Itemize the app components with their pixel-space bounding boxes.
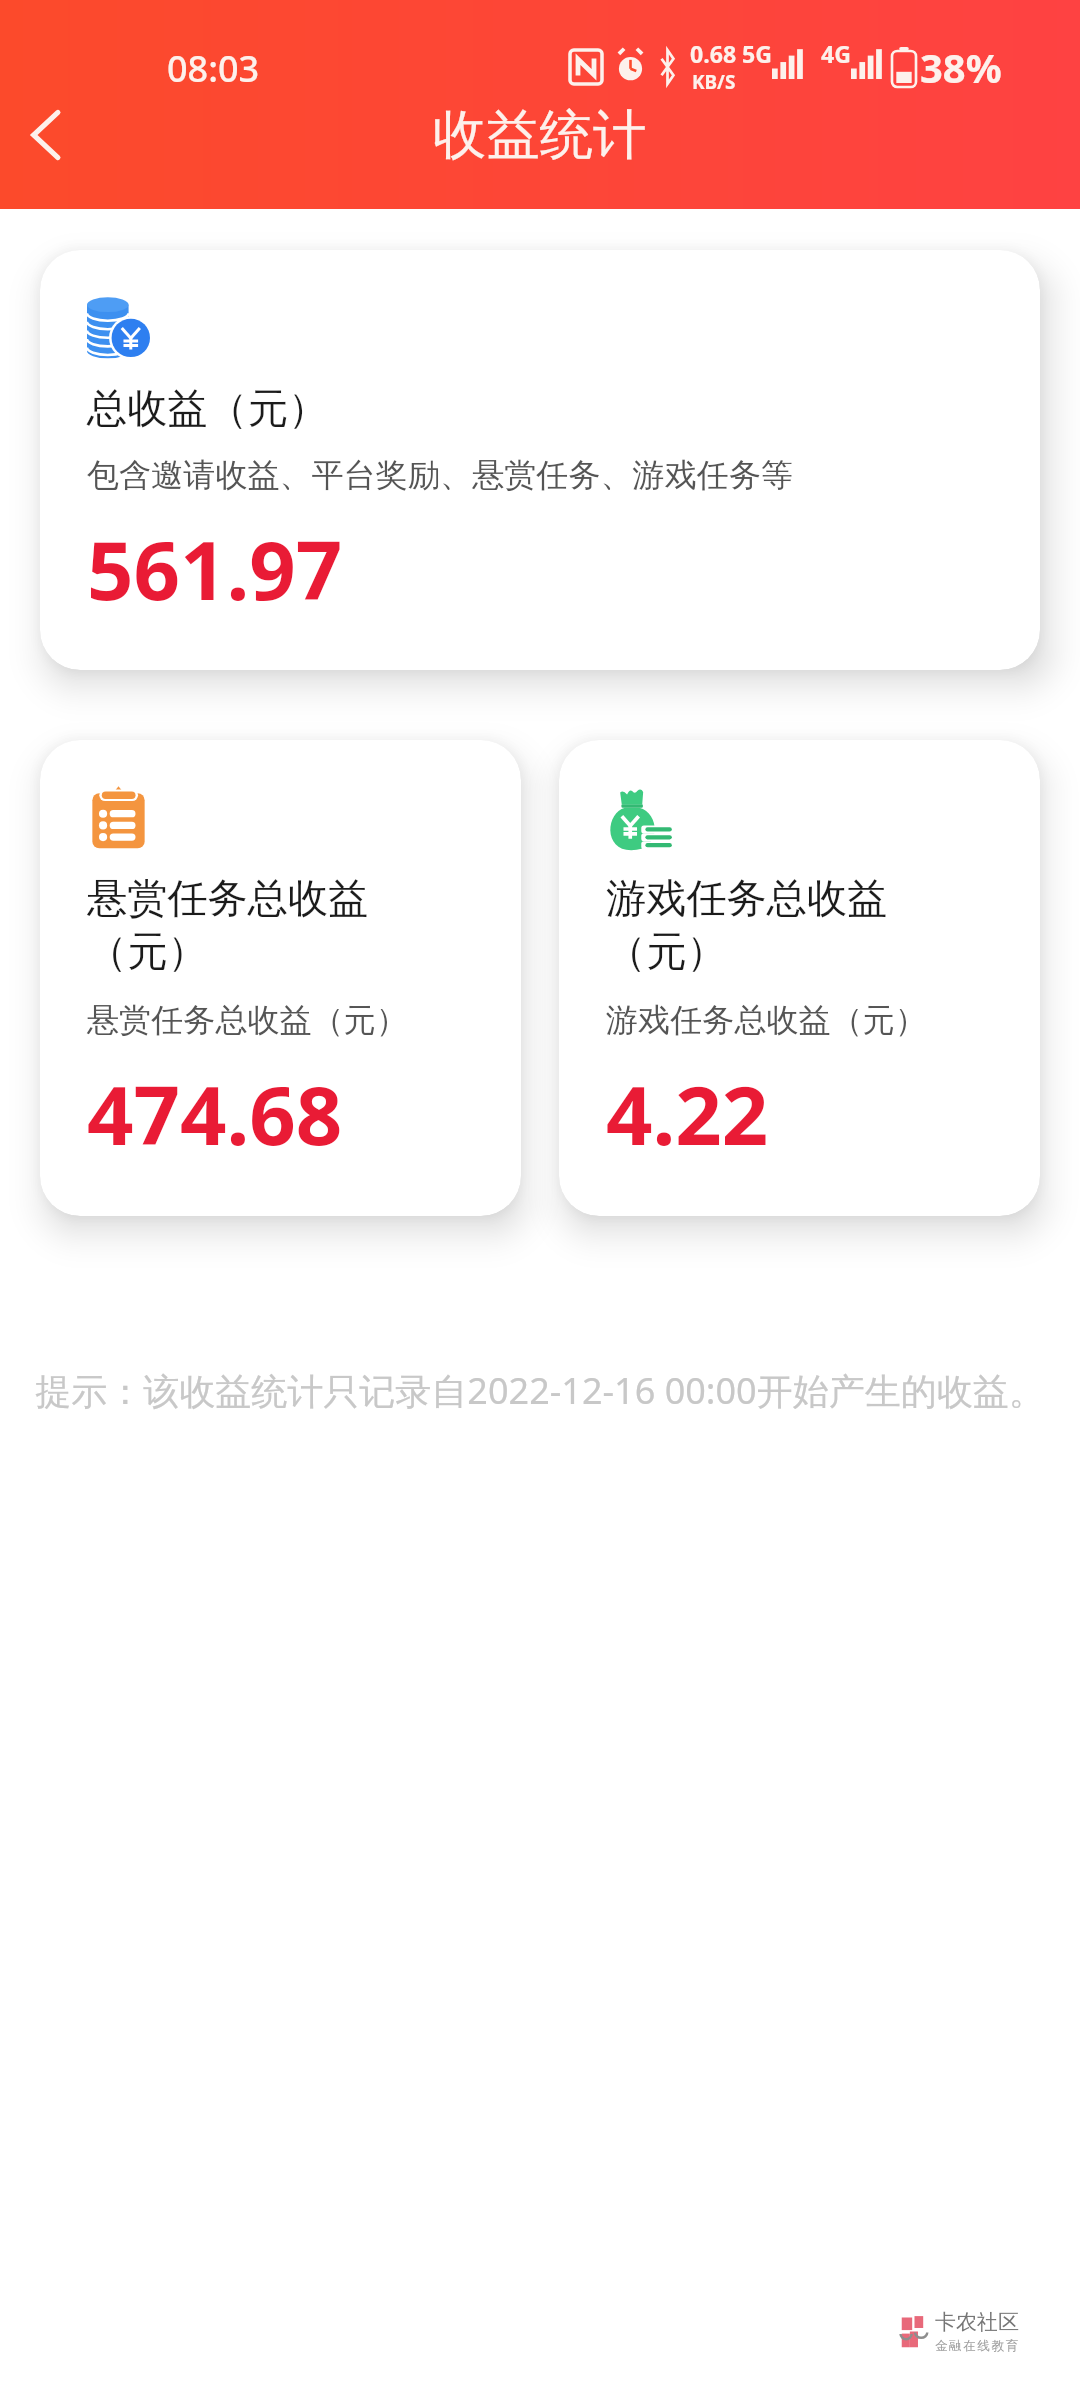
staticText: 0.68	[690, 38, 737, 69]
staticText: 包含邀请收益、平台奖励、悬赏任务、游戏任务等	[87, 455, 794, 495]
staticText: 4.22	[606, 1058, 769, 1169]
staticText: 总收益（元）	[87, 383, 329, 434]
staticText: 08:03	[167, 44, 260, 93]
staticText: 悬赏任务总收益（元）	[87, 873, 387, 977]
staticText: 提示：该收益统计只记录自2022-12-16 00:00开始产生的收益。	[0, 1366, 1080, 1415]
staticText: KB/S	[692, 69, 736, 95]
staticText: 38%	[920, 40, 1002, 94]
button[interactable]: 悬赏任务总收益（元）	[40, 740, 521, 1216]
staticText: 5G	[742, 38, 772, 69]
button[interactable]: 总收益（元）	[40, 250, 1040, 670]
staticText: 474.68	[87, 1058, 343, 1169]
staticText: 悬赏任务总收益（元）	[87, 1000, 408, 1040]
staticText: 收益统计	[433, 102, 647, 169]
staticText: 561.97	[87, 513, 343, 624]
button[interactable]: Back	[0, 90, 91, 180]
button[interactable]: 游戏任务总收益（元）	[559, 740, 1040, 1216]
staticText: 游戏任务总收益（元）	[606, 1000, 927, 1040]
staticText: 4G	[821, 38, 851, 69]
staticText: 卡农社区	[935, 2309, 1019, 2335]
staticText: 金融在线教育	[935, 2338, 1020, 2354]
staticText: 游戏任务总收益（元）	[606, 873, 906, 977]
